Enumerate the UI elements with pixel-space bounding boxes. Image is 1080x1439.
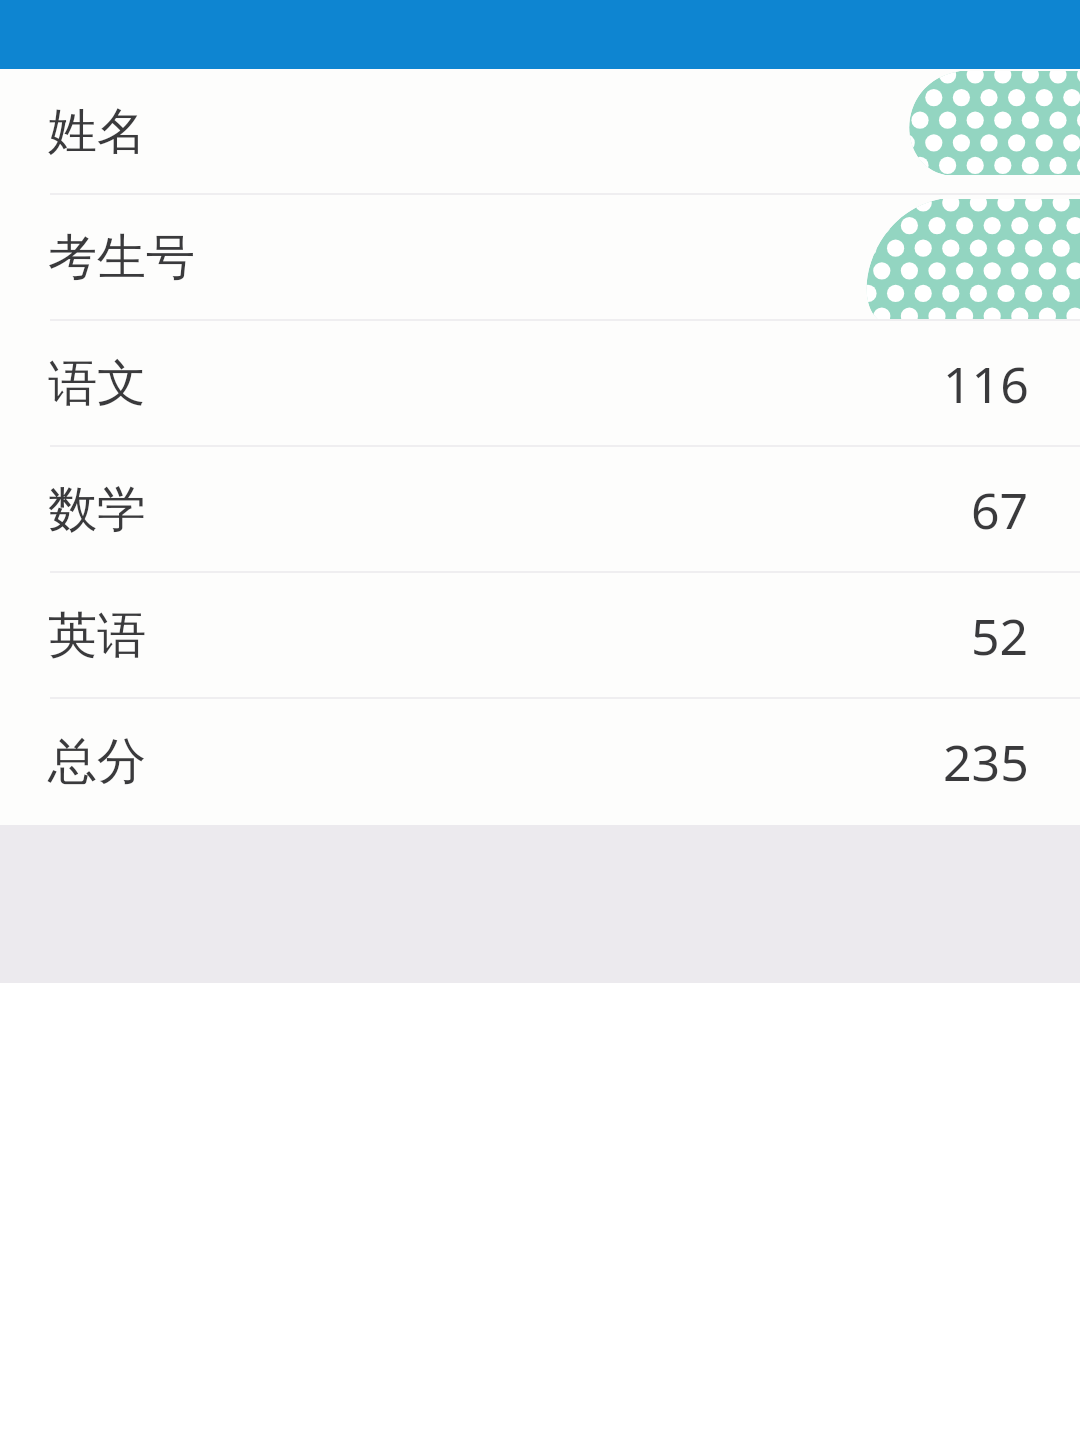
button[interactable]: 数学: [0, 447, 1080, 573]
staticText: 姓名: [48, 101, 146, 163]
other: Redacted exam number: [860, 199, 1080, 321]
staticText: 52: [971, 602, 1029, 670]
button[interactable]: 英语: [0, 573, 1080, 699]
staticText: 0822: [914, 224, 1029, 292]
staticText: 数学: [48, 479, 146, 541]
staticText: 235: [943, 728, 1029, 796]
button[interactable]: 考生号: [0, 195, 1080, 321]
staticText: 67: [971, 476, 1029, 544]
staticText: 总分: [48, 731, 146, 793]
other: Redacted name: [900, 71, 1080, 175]
button[interactable]: 总分: [0, 699, 1080, 825]
staticText: 考生号: [48, 227, 195, 289]
staticText: 英语: [48, 605, 146, 667]
staticText: 语文: [48, 353, 146, 415]
button[interactable]: 姓名: [0, 69, 1080, 195]
button[interactable]: 语文: [0, 321, 1080, 447]
staticText: 116: [943, 350, 1029, 418]
